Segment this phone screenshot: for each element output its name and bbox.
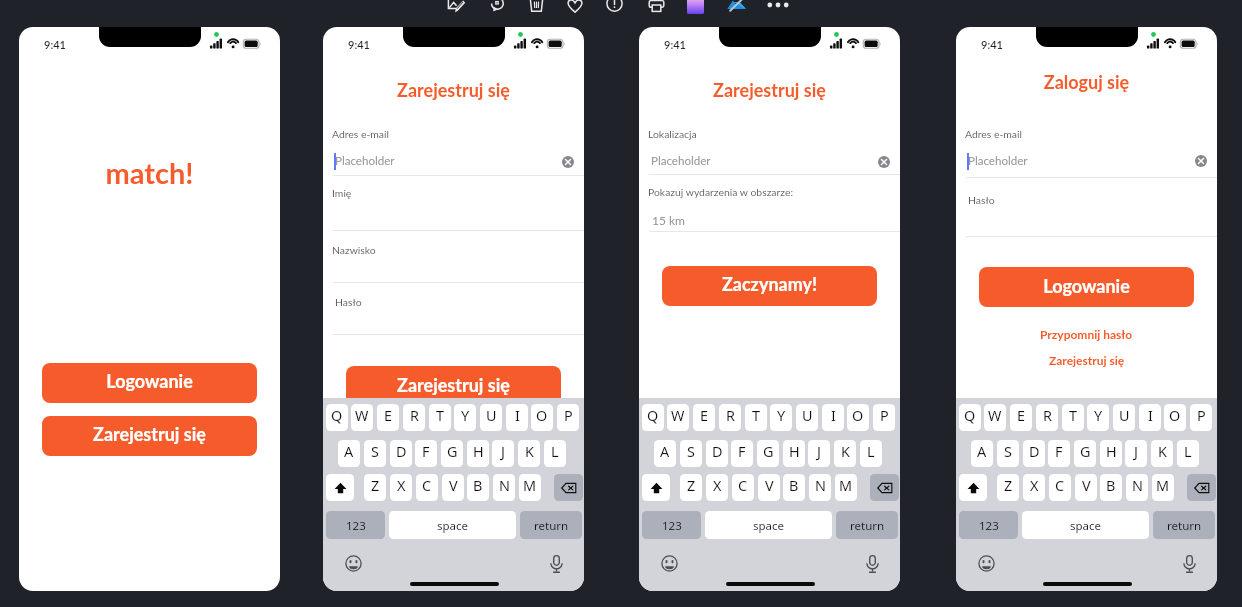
button[interactable]: F [415, 440, 437, 467]
button[interactable]: Q [959, 404, 981, 431]
button[interactable]: V [1075, 474, 1097, 501]
button[interactable]: B [1100, 474, 1122, 501]
button[interactable]: Shift [326, 474, 354, 501]
button[interactable]: return [520, 511, 582, 539]
button[interactable]: L [544, 440, 566, 467]
button[interactable]: F [731, 440, 753, 467]
button[interactable]: S [680, 440, 702, 467]
button[interactable]: L [1177, 440, 1199, 467]
button[interactable]: V [758, 474, 780, 501]
button[interactable]: Q [326, 404, 348, 431]
button[interactable]: C [732, 474, 754, 501]
button[interactable]: B [783, 474, 805, 501]
button[interactable]: S [997, 440, 1019, 467]
button[interactable]: D [390, 440, 412, 467]
button[interactable]: 123 [326, 511, 385, 539]
button[interactable]: Delete [519, 0, 553, 14]
button[interactable]: Filters [678, 0, 712, 14]
button[interactable]: D [706, 440, 728, 467]
button[interactable]: K [1151, 440, 1173, 467]
button[interactable]: P [873, 404, 895, 431]
button[interactable]: G [441, 440, 463, 467]
button[interactable]: Backspace [870, 474, 899, 501]
button[interactable]: Rotate [480, 0, 514, 14]
button[interactable]: A [971, 440, 993, 467]
button[interactable]: E [693, 404, 715, 431]
button[interactable]: Logowanie [42, 363, 257, 403]
button[interactable]: W [667, 404, 689, 431]
button[interactable]: More options [761, 0, 795, 14]
button[interactable]: A [338, 440, 360, 467]
button[interactable]: G [1074, 440, 1096, 467]
button[interactable]: return [836, 511, 898, 539]
button[interactable]: 123 [642, 511, 701, 539]
button[interactable]: 123 [959, 511, 1018, 539]
button[interactable]: E [377, 404, 399, 431]
button[interactable]: R [1036, 404, 1058, 431]
button[interactable]: H [467, 440, 489, 467]
button[interactable]: N [809, 474, 831, 501]
button[interactable]: Zarejestruj się [42, 416, 257, 456]
button[interactable]: K [518, 440, 540, 467]
button[interactable]: Przypomnij hasło [1034, 324, 1139, 344]
button[interactable]: Q [642, 404, 664, 431]
button[interactable]: E [1010, 404, 1032, 431]
button[interactable]: C [1049, 474, 1071, 501]
button[interactable]: A [654, 440, 676, 467]
button[interactable]: U [1113, 404, 1135, 431]
button[interactable]: W [984, 404, 1006, 431]
button[interactable]: U [796, 404, 818, 431]
button[interactable]: space [1022, 511, 1149, 539]
button[interactable]: M [519, 474, 541, 501]
button[interactable]: I [822, 404, 844, 431]
button[interactable]: space [389, 511, 516, 539]
button[interactable]: Zaczynamy! [662, 266, 877, 306]
button[interactable]: W [351, 404, 373, 431]
button[interactable]: Zarejestruj się [1043, 350, 1131, 370]
button[interactable]: Backspace [1187, 474, 1216, 501]
button[interactable]: X [1023, 474, 1045, 501]
button[interactable]: Z [680, 474, 702, 501]
button[interactable]: T [745, 404, 767, 431]
button[interactable]: T [1062, 404, 1084, 431]
button[interactable]: N [493, 474, 515, 501]
button[interactable]: J [808, 440, 830, 467]
button[interactable]: Y [454, 404, 476, 431]
button[interactable]: T [429, 404, 451, 431]
button[interactable]: N [1126, 474, 1148, 501]
button[interactable]: P [1190, 404, 1212, 431]
button[interactable]: Logowanie [979, 267, 1194, 307]
button[interactable]: U [480, 404, 502, 431]
button[interactable]: B [467, 474, 489, 501]
button[interactable]: R [719, 404, 741, 431]
button[interactable]: X [706, 474, 728, 501]
button[interactable]: Clear text [875, 153, 892, 170]
button[interactable]: P [557, 404, 579, 431]
button[interactable]: Shift [959, 474, 987, 501]
button[interactable]: Favorite [558, 0, 592, 14]
button[interactable]: L [860, 440, 882, 467]
button[interactable]: J [492, 440, 514, 467]
button[interactable]: I [506, 404, 528, 431]
button[interactable]: Clear text [1192, 152, 1209, 169]
button[interactable]: Emoji keyboard [661, 555, 678, 572]
button[interactable]: Clear text [559, 153, 576, 170]
button[interactable]: C [416, 474, 438, 501]
button[interactable]: Zarejestruj się [346, 366, 561, 406]
button[interactable]: R [403, 404, 425, 431]
button[interactable]: Hide markup [720, 0, 754, 14]
button[interactable]: M [1152, 474, 1174, 501]
button[interactable]: Emoji keyboard [978, 555, 995, 572]
button[interactable]: H [1100, 440, 1122, 467]
button[interactable]: M [835, 474, 857, 501]
button[interactable]: S [364, 440, 386, 467]
button[interactable]: F [1048, 440, 1070, 467]
button[interactable]: Backspace [554, 474, 583, 501]
button[interactable]: Dictate [864, 555, 881, 574]
button[interactable]: K [834, 440, 856, 467]
button[interactable]: Shift [642, 474, 670, 501]
button[interactable]: J [1125, 440, 1147, 467]
button[interactable]: X [390, 474, 412, 501]
button[interactable]: return [1153, 511, 1215, 539]
button[interactable]: V [442, 474, 464, 501]
